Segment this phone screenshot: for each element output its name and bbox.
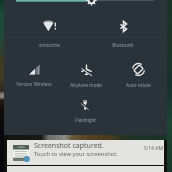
staticText: Screenshot captured. <box>34 141 104 151</box>
button[interactable]: Bluetooth <box>98 15 148 48</box>
button[interactable]: Auto-rotate <box>113 58 163 88</box>
staticText: 5:14 AM <box>144 145 163 152</box>
button[interactable]: Screenshot captured. <box>7 140 164 165</box>
button[interactable]: Flashlight <box>60 94 110 123</box>
staticText: Auto-rotate <box>126 82 151 88</box>
staticText: Touch to view your screenshot. <box>34 150 118 158</box>
button[interactable]: Verizon Wireless <box>9 58 59 87</box>
button[interactable]: Airplane mode <box>61 58 111 88</box>
staticText: smoochie <box>39 42 60 48</box>
staticText: Verizon Wireless <box>16 81 52 87</box>
staticText: Flashlight <box>75 117 96 123</box>
staticText: Airplane mode <box>70 82 102 88</box>
staticText: Bluetooth <box>112 42 134 48</box>
button[interactable]: Brightness settings <box>86 0 97 6</box>
button[interactable]: smoochie <box>24 14 74 48</box>
